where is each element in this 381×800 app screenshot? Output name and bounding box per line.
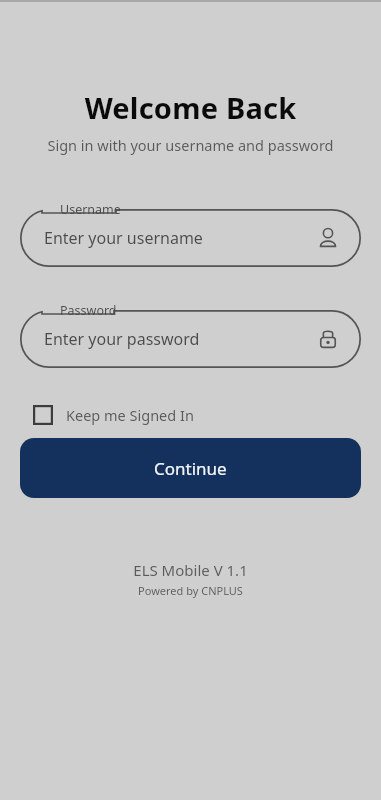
staticText: Enter your username <box>44 227 203 249</box>
button[interactable]: Keep me Signed In <box>33 405 194 425</box>
button[interactable]: Enter your password <box>20 310 361 368</box>
staticText: Powered by CNPLUS <box>0 583 381 598</box>
staticText: Password <box>60 302 117 319</box>
staticText: ELS Mobile V 1.1 <box>0 560 381 580</box>
staticText: Keep me Signed In <box>66 405 194 425</box>
staticText: Continue <box>154 457 227 480</box>
other: Password <box>317 328 339 350</box>
staticText: Enter your password <box>44 328 200 350</box>
staticText: Welcome Back <box>0 88 381 127</box>
staticText: Username <box>60 201 121 218</box>
staticText: Sign in with your username and password <box>0 135 381 155</box>
other: Username <box>317 227 339 249</box>
button[interactable]: Continue <box>20 438 361 498</box>
button[interactable]: Enter your username <box>20 209 361 267</box>
